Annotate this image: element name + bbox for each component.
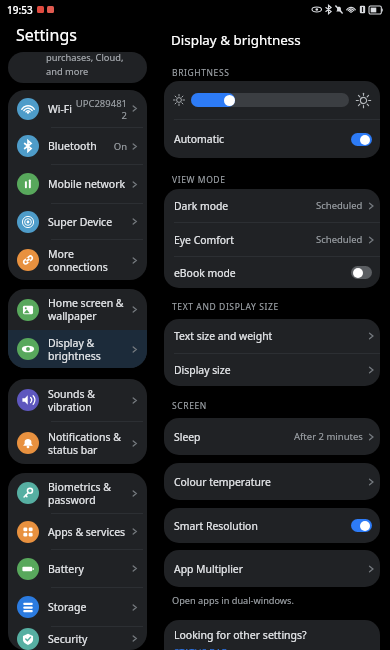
staticText: Display & brightness <box>171 31 301 49</box>
staticText: Sounds & vibration <box>48 387 129 414</box>
staticText: Open apps in dual-windows. <box>172 594 294 607</box>
staticText: Sleep <box>174 430 294 444</box>
staticText: Eye Comfort <box>174 233 316 247</box>
staticText: Smart Resolution <box>174 519 351 533</box>
staticText: TEXT AND DISPLAY SIZE <box>172 301 279 313</box>
button[interactable]: Text size and weight <box>164 319 380 353</box>
staticText: Automatic <box>174 132 351 146</box>
button[interactable]: Apps & services <box>8 514 147 549</box>
button[interactable]: Smart Resolution <box>164 508 380 543</box>
staticText: purchases, Cloud, <box>46 52 124 64</box>
button[interactable] <box>164 81 380 119</box>
staticText: Display & brightness <box>48 336 129 363</box>
staticText: After 2 minutes <box>294 430 363 443</box>
button[interactable]: Bluetooth <box>8 128 147 164</box>
staticText: Scheduled <box>316 199 363 212</box>
staticText: SCREEN <box>172 400 207 412</box>
button[interactable]: Wi-Fi <box>8 90 147 127</box>
button[interactable]: Sleep <box>164 418 380 455</box>
staticText: Mobile network <box>48 177 129 191</box>
staticText: More connections <box>48 247 129 274</box>
staticText: Dark mode <box>174 199 316 213</box>
button[interactable]: eBook mode <box>164 257 380 288</box>
staticText: Text size and weight <box>174 329 365 343</box>
staticText: STATUS BAR <box>174 646 228 650</box>
button[interactable]: Sounds & vibration <box>8 379 147 421</box>
button[interactable]: Storage <box>8 588 147 626</box>
staticText: Battery <box>48 562 129 576</box>
staticText: VIEW MODE <box>172 174 226 186</box>
staticText: UPC289481 2 <box>75 97 127 121</box>
button[interactable]: Notifications & status bar <box>8 422 147 464</box>
staticText: Display size <box>174 363 365 377</box>
staticText: Notifications & status bar <box>48 430 129 457</box>
staticText: Home screen & wallpaper <box>48 296 129 323</box>
button[interactable]: Biometrics & password <box>8 473 147 513</box>
staticText: Wi-Fi <box>48 102 75 116</box>
staticText: Scheduled <box>316 233 363 246</box>
staticText: On <box>113 140 127 153</box>
staticText: eBook mode <box>174 266 351 280</box>
button[interactable]: Mobile network <box>8 165 147 203</box>
button[interactable]: Battery <box>8 550 147 587</box>
staticText: Settings <box>16 24 77 46</box>
button[interactable]: Colour temperature <box>164 463 380 500</box>
button[interactable]: Super Device <box>8 204 147 239</box>
staticText: Biometrics & password <box>48 480 129 507</box>
button[interactable]: App Multiplier <box>164 550 380 587</box>
staticText: BRIGHTNESS <box>172 67 230 79</box>
button[interactable]: purchases, Cloud, <box>8 52 147 83</box>
staticText: Security <box>48 632 129 646</box>
button[interactable]: Eye Comfort <box>164 223 380 256</box>
button[interactable]: More connections <box>8 240 147 280</box>
staticText: Bluetooth <box>48 139 113 153</box>
staticText: App Multiplier <box>174 562 365 576</box>
staticText: Super Device <box>48 215 129 229</box>
button[interactable]: Dark mode <box>164 189 380 222</box>
staticText: 19:53 <box>7 3 33 17</box>
staticText: Looking for other settings? <box>174 628 307 642</box>
button[interactable]: Security <box>8 627 147 650</box>
button[interactable]: Home screen & wallpaper <box>8 289 147 330</box>
staticText: Storage <box>48 600 129 614</box>
button[interactable]: Automatic <box>164 120 380 158</box>
staticText: and more <box>46 65 89 78</box>
button[interactable]: Display size <box>164 354 380 386</box>
staticText: Colour temperature <box>174 475 365 489</box>
button[interactable]: Display & brightness <box>8 330 147 368</box>
staticText: Apps & services <box>48 525 129 539</box>
